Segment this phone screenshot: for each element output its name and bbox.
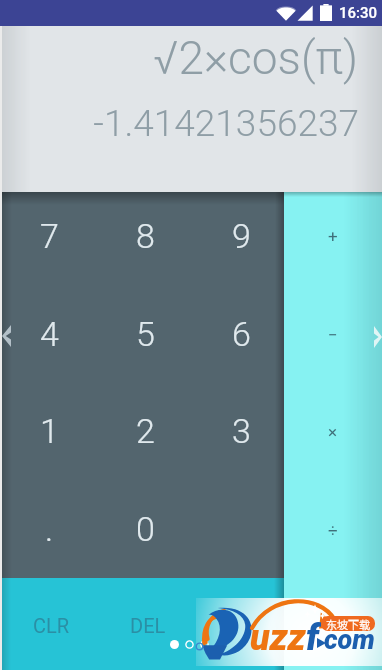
staticText: √2×cos(π) [153,31,358,85]
staticText: 2 [136,411,155,451]
staticText: uzz [250,617,306,659]
button[interactable]: 0 [98,481,192,577]
button[interactable]: × [284,408,382,456]
button[interactable]: 1 [2,383,96,479]
staticText: com [324,624,375,656]
staticText: 东坡下载 [326,616,370,631]
staticText: . [45,509,54,549]
staticText: 9 [232,216,251,256]
button[interactable]: 9 [194,188,288,284]
button[interactable]: 3 [194,383,288,479]
staticText: 7 [40,216,59,256]
staticText: + [328,226,338,246]
button[interactable]: 4 [2,286,96,382]
staticText: -1.41421356237 [93,102,359,145]
staticText: 5 [136,314,155,354]
staticText: 0 [136,509,155,549]
staticText: × [328,422,338,442]
button[interactable]: 5 [98,286,192,382]
staticText: − [328,325,338,345]
button[interactable]: DEL [101,579,195,670]
button[interactable]: . [2,481,96,577]
staticText: CLR [33,614,70,637]
other: Next page [374,326,382,348]
staticText: 3 [232,411,251,451]
staticText: DEL [130,614,166,637]
other: Previous page [2,325,11,347]
button[interactable]: + [284,212,382,260]
button[interactable]: 7 [2,188,96,284]
staticText: 16:30 [339,4,378,22]
staticText: f [306,617,319,659]
staticText: 1 [40,411,59,451]
button[interactable]: 2 [98,383,192,479]
button[interactable] [194,481,288,577]
staticText: ÷ [328,520,338,540]
staticText: 8 [136,216,155,256]
button[interactable]: CLR [4,579,98,670]
staticText: 6 [232,314,251,354]
button[interactable]: − [284,311,382,359]
button[interactable]: ÷ [284,506,382,554]
button[interactable]: 6 [194,286,288,382]
button[interactable]: 8 [98,188,192,284]
staticText: 4 [40,314,59,354]
